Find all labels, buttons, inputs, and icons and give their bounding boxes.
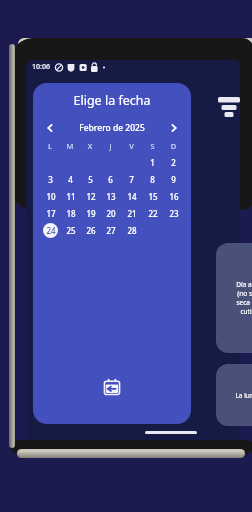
button[interactable]: 26 bbox=[83, 223, 98, 238]
button[interactable]: 18 bbox=[63, 206, 78, 221]
button[interactable]: 24 bbox=[43, 223, 58, 238]
staticText: 14 bbox=[127, 191, 137, 202]
staticText: 3 bbox=[48, 174, 53, 185]
staticText: 2 bbox=[171, 157, 176, 168]
staticText: 10:06 bbox=[32, 62, 50, 72]
staticText: 21 bbox=[127, 208, 137, 219]
staticText: Elige la fecha bbox=[33, 92, 191, 109]
button[interactable]: 21 bbox=[124, 206, 139, 221]
staticText: S bbox=[142, 141, 163, 151]
button[interactable]: La luna bbox=[216, 364, 252, 426]
staticText: cuti bbox=[240, 307, 252, 316]
button[interactable]: 10 bbox=[43, 189, 58, 204]
button[interactable]: 20 bbox=[103, 206, 118, 221]
button[interactable]: 13 bbox=[103, 189, 118, 204]
button[interactable]: 9 bbox=[166, 172, 181, 187]
button[interactable]: 2 bbox=[166, 155, 181, 170]
button[interactable]: 16 bbox=[166, 189, 181, 204]
button[interactable]: 15 bbox=[145, 189, 160, 204]
staticText: 13 bbox=[106, 191, 116, 202]
staticText: J bbox=[100, 141, 121, 151]
button[interactable]: 19 bbox=[83, 206, 98, 221]
staticText: 20 bbox=[106, 208, 116, 219]
button[interactable]: 11 bbox=[63, 189, 78, 204]
staticText: 15 bbox=[148, 191, 158, 202]
staticText: 4 bbox=[68, 174, 73, 185]
staticText: X bbox=[80, 141, 100, 151]
button[interactable]: 12 bbox=[83, 189, 98, 204]
button[interactable]: 23 bbox=[166, 206, 181, 221]
button[interactable]: 1 bbox=[145, 155, 160, 170]
button[interactable]: Previous date bbox=[101, 376, 123, 398]
staticText: M bbox=[60, 141, 80, 151]
staticText: 23 bbox=[169, 208, 179, 219]
staticText: La luna bbox=[235, 391, 252, 400]
staticText: V bbox=[121, 141, 142, 151]
button[interactable]: 27 bbox=[103, 223, 118, 238]
staticText: 17 bbox=[46, 208, 56, 219]
staticText: Febrero de 2025 bbox=[58, 122, 166, 134]
staticText: 22 bbox=[148, 208, 158, 219]
staticText: D bbox=[163, 141, 184, 151]
staticText: 6 bbox=[108, 174, 113, 185]
staticText: Día ad bbox=[236, 280, 252, 289]
button[interactable]: 14 bbox=[124, 189, 139, 204]
staticText: 10 bbox=[46, 191, 56, 202]
button[interactable]: 25 bbox=[63, 223, 78, 238]
button[interactable]: 4 bbox=[63, 172, 78, 187]
button[interactable]: Next month bbox=[166, 120, 182, 136]
button[interactable]: Previous month bbox=[42, 120, 58, 136]
staticText: (no se bbox=[237, 289, 252, 298]
staticText: seca b bbox=[236, 298, 252, 307]
staticText: 5 bbox=[88, 174, 93, 185]
staticText: 7 bbox=[129, 174, 134, 185]
staticText: 26 bbox=[86, 225, 96, 236]
staticText: 27 bbox=[106, 225, 116, 236]
staticText: 16 bbox=[169, 191, 179, 202]
button[interactable]: Día ad bbox=[216, 243, 252, 353]
staticText: 28 bbox=[127, 225, 137, 236]
button[interactable]: 8 bbox=[145, 172, 160, 187]
staticText: 11 bbox=[66, 191, 76, 202]
button[interactable]: 5 bbox=[83, 172, 98, 187]
staticText: L bbox=[40, 141, 60, 151]
staticText: 8 bbox=[150, 174, 155, 185]
staticText: 25 bbox=[66, 225, 76, 236]
staticText: 9 bbox=[171, 174, 176, 185]
staticText: 1 bbox=[150, 157, 155, 168]
staticText: 18 bbox=[66, 208, 76, 219]
button[interactable]: 17 bbox=[43, 206, 58, 221]
button[interactable]: 22 bbox=[145, 206, 160, 221]
button[interactable]: 6 bbox=[103, 172, 118, 187]
staticText: 19 bbox=[86, 208, 96, 219]
button[interactable]: 3 bbox=[43, 172, 58, 187]
button[interactable]: 28 bbox=[124, 223, 139, 238]
button[interactable]: 7 bbox=[124, 172, 139, 187]
button[interactable]: Filter bbox=[216, 92, 242, 118]
staticText: 24 bbox=[46, 225, 56, 236]
staticText: 12 bbox=[86, 191, 96, 202]
